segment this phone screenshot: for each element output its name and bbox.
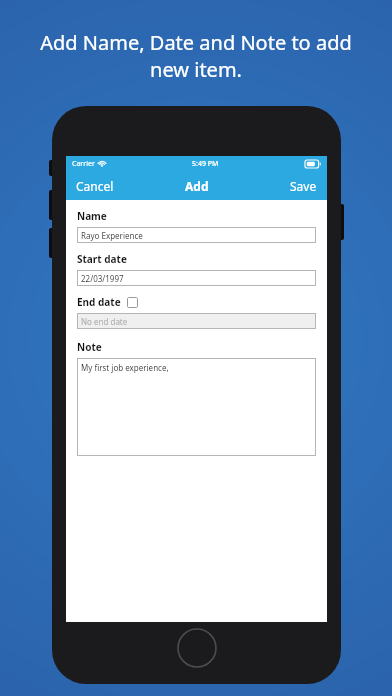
staticText: Rayo Experience bbox=[81, 230, 143, 241]
button[interactable]: My first job experience, bbox=[77, 358, 316, 456]
staticText: Start date bbox=[77, 252, 127, 266]
staticText: End date bbox=[77, 295, 121, 309]
button[interactable]: Cancel bbox=[66, 172, 124, 200]
button[interactable]: Save bbox=[280, 172, 327, 200]
button[interactable]: No end date bbox=[77, 313, 316, 329]
staticText: Save bbox=[290, 178, 317, 194]
staticText: 5:49 PM bbox=[192, 159, 219, 169]
button[interactable]: Home bbox=[177, 628, 217, 668]
staticText: My first job experience, bbox=[81, 362, 169, 373]
button[interactable]: Rayo Experience bbox=[77, 227, 316, 243]
staticText: Add Name, Date and Note to add new item. bbox=[28, 29, 364, 83]
staticText: Cancel bbox=[76, 178, 114, 194]
staticText: Note bbox=[77, 340, 102, 354]
staticText: Add bbox=[185, 178, 209, 194]
staticText: Carrier bbox=[72, 159, 95, 169]
staticText: No end date bbox=[81, 316, 128, 327]
button[interactable]: 22/03/1997 bbox=[77, 270, 316, 286]
staticText: Name bbox=[77, 209, 107, 223]
staticText: 22/03/1997 bbox=[81, 273, 124, 284]
button[interactable]: Toggle end date bbox=[127, 297, 138, 308]
